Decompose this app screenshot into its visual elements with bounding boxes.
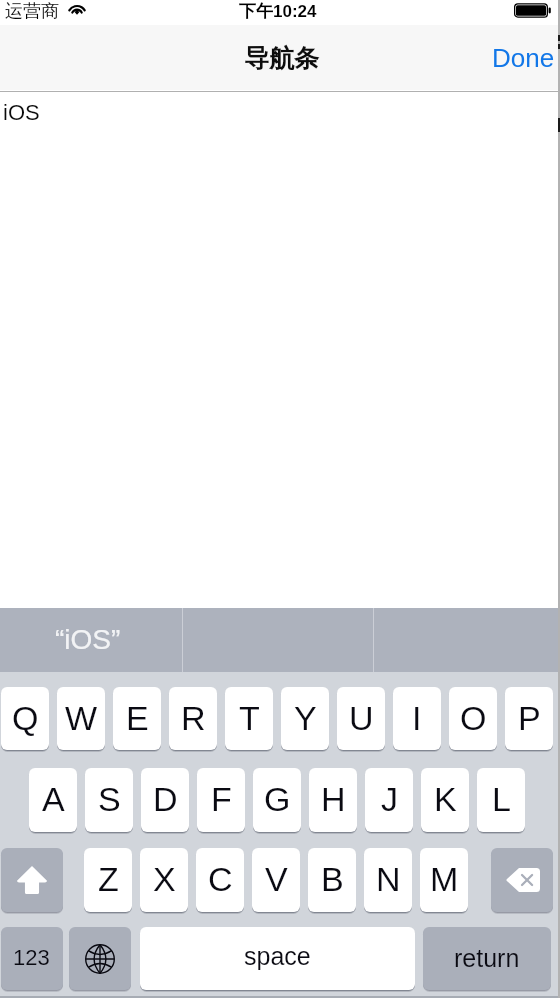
button[interactable]: Z — [84, 848, 132, 912]
staticText: E — [126, 699, 149, 737]
button[interactable]: Shift — [1, 848, 63, 912]
button[interactable]: Q — [1, 687, 49, 750]
staticText: S — [98, 780, 121, 818]
button[interactable]: W — [57, 687, 105, 750]
button[interactable]: U — [337, 687, 385, 750]
staticText: I — [412, 699, 422, 737]
button[interactable]: G — [253, 768, 301, 832]
staticText: G — [264, 780, 291, 818]
staticText: V — [265, 860, 288, 898]
staticText: L — [492, 780, 511, 818]
staticText: T — [239, 699, 260, 737]
button[interactable]: L — [477, 768, 525, 832]
staticText: N — [376, 860, 401, 898]
staticText: H — [321, 780, 346, 818]
button[interactable]: E — [113, 687, 161, 750]
button[interactable]: Done — [478, 34, 560, 83]
button[interactable]: A — [29, 768, 77, 832]
staticText: R — [181, 699, 206, 737]
button[interactable]: X — [140, 848, 188, 912]
staticText: 导航条 — [244, 43, 319, 74]
button[interactable]: “iOS” — [0, 608, 182, 672]
staticText: C — [208, 860, 233, 898]
button[interactable]: H — [309, 768, 357, 832]
button[interactable]: V — [252, 848, 300, 912]
staticText: Z — [98, 860, 119, 898]
button[interactable]: J — [365, 768, 413, 832]
button[interactable]: Y — [281, 687, 329, 750]
staticText: K — [434, 780, 457, 818]
button[interactable]: K — [421, 768, 469, 832]
button[interactable]: I — [393, 687, 441, 750]
staticText: D — [153, 780, 178, 818]
staticText: return — [454, 944, 520, 972]
staticText: 123 — [13, 945, 50, 970]
button[interactable]: R — [169, 687, 217, 750]
staticText: 下午10:24 — [239, 1, 317, 22]
button[interactable]: P — [505, 687, 553, 750]
button[interactable]: 123 — [1, 927, 63, 990]
staticText: O — [460, 699, 487, 737]
button[interactable]: space — [140, 927, 415, 990]
staticText: 运营商 — [5, 0, 59, 23]
staticText: J — [381, 780, 398, 818]
button[interactable]: M — [420, 848, 468, 912]
staticText: M — [430, 860, 459, 898]
staticText: F — [211, 780, 232, 818]
button[interactable]: D — [141, 768, 189, 832]
staticText: Y — [294, 699, 317, 737]
button[interactable]: F — [197, 768, 245, 832]
button[interactable]: N — [364, 848, 412, 912]
staticText: iOS — [3, 100, 40, 125]
button[interactable]: Backspace — [491, 848, 553, 912]
staticText: space — [244, 942, 311, 970]
staticText: Done — [492, 43, 555, 72]
button[interactable]: return — [423, 927, 551, 990]
button[interactable]: C — [196, 848, 244, 912]
staticText: “iOS” — [55, 624, 121, 655]
staticText: B — [321, 860, 344, 898]
button[interactable]: S — [85, 768, 133, 832]
staticText: U — [349, 699, 374, 737]
button[interactable]: T — [225, 687, 273, 750]
staticText: P — [518, 699, 541, 737]
staticText: W — [65, 699, 98, 737]
button[interactable]: O — [449, 687, 497, 750]
button[interactable]: Change keyboard — [69, 927, 131, 990]
button[interactable]: B — [308, 848, 356, 912]
staticText: Q — [12, 699, 39, 737]
staticText: X — [153, 860, 176, 898]
staticText: A — [42, 780, 65, 818]
